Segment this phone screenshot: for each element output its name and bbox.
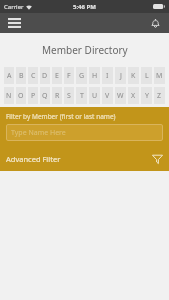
staticText: Type Name Here	[11, 128, 66, 138]
button[interactable]: N	[4, 87, 14, 104]
button[interactable]: Menu	[5, 15, 23, 31]
staticText: Member Directory	[42, 43, 128, 57]
staticText: T	[80, 91, 84, 101]
staticText: E	[55, 71, 59, 81]
button[interactable]: B	[16, 67, 26, 84]
button[interactable]: X	[128, 87, 139, 104]
staticText: N	[6, 91, 12, 101]
button[interactable]: Y	[141, 87, 152, 104]
button[interactable]: V	[102, 87, 113, 104]
staticText: Carrier	[4, 3, 24, 11]
staticText: O	[18, 91, 24, 101]
button[interactable]: F	[64, 67, 74, 84]
staticText: 5:46 PM	[73, 3, 96, 11]
button[interactable]: U	[89, 87, 100, 104]
button[interactable]: W	[115, 87, 126, 104]
staticText: F	[67, 71, 71, 81]
staticText: U	[92, 91, 98, 101]
staticText: P	[31, 91, 36, 101]
staticText: Advanced Filter	[6, 154, 61, 164]
staticText: Filter by Member (first or last name)	[6, 112, 116, 121]
button[interactable]: K	[128, 67, 139, 84]
other: Advanced Filter	[152, 154, 163, 164]
button[interactable]: D	[40, 67, 50, 84]
button[interactable]: I	[102, 67, 113, 84]
staticText: S	[67, 91, 71, 101]
button[interactable]: L	[141, 67, 152, 84]
staticText: A	[7, 71, 12, 81]
button[interactable]: O	[16, 87, 26, 104]
button[interactable]: Advanced Filter	[6, 151, 163, 167]
staticText: Z	[157, 91, 162, 101]
staticText: J	[120, 71, 122, 81]
button[interactable]: M	[154, 67, 165, 84]
staticText: K	[131, 71, 136, 81]
staticText: M	[156, 71, 163, 81]
staticText: R	[55, 91, 60, 101]
staticText: I	[106, 71, 109, 81]
button[interactable]: H	[89, 67, 100, 84]
staticText: D	[42, 71, 48, 81]
button[interactable]: J	[115, 67, 126, 84]
button[interactable]: P	[28, 87, 38, 104]
button[interactable]: Q	[40, 87, 50, 104]
button[interactable]: E	[52, 67, 62, 84]
button[interactable]: R	[52, 87, 62, 104]
staticText: V	[105, 91, 110, 101]
staticText: G	[79, 71, 85, 81]
button[interactable]: T	[76, 87, 87, 104]
staticText: X	[131, 91, 136, 101]
button[interactable]: G	[76, 67, 87, 84]
button[interactable]: A	[4, 67, 14, 84]
staticText: W	[117, 91, 124, 101]
staticText: H	[92, 71, 98, 81]
button[interactable]: S	[64, 87, 74, 104]
staticText: B	[19, 71, 24, 81]
button[interactable]: Z	[154, 87, 165, 104]
staticText: L	[145, 71, 149, 81]
staticText: Y	[145, 91, 149, 101]
staticText: Q	[42, 91, 48, 101]
button[interactable]: Notifications	[147, 15, 163, 31]
staticText: C	[31, 71, 36, 81]
button[interactable]: Type Name Here	[6, 124, 163, 141]
button[interactable]: C	[28, 67, 38, 84]
